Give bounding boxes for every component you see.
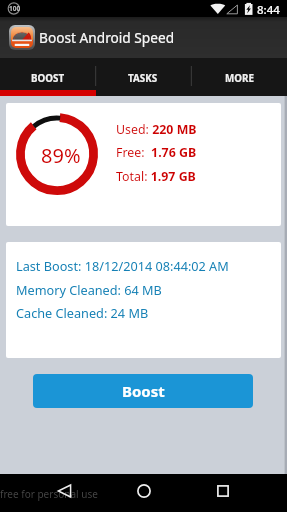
staticText: Used: 220 MB	[116, 121, 197, 138]
staticText: free for personal use	[0, 487, 98, 501]
staticText: Free: 1.76 GB	[116, 144, 197, 161]
staticText: Last Boost: 18/12/2014 08:44:02 AM	[16, 257, 229, 274]
button[interactable]: Boost	[33, 374, 253, 408]
button[interactable]: BOOST	[0, 58, 95, 96]
button[interactable]: Home	[123, 472, 164, 510]
button[interactable]: Back	[44, 472, 85, 510]
staticText: 100	[9, 4, 21, 13]
staticText: Memory Cleaned: 64 MB	[16, 281, 162, 298]
staticText: Boost	[122, 381, 165, 401]
staticText: Cache Cleaned: 24 MB	[16, 304, 149, 321]
button[interactable]: Recents	[202, 472, 243, 510]
staticText: MORE	[225, 72, 254, 85]
button[interactable]: MORE	[191, 58, 287, 96]
staticText: TASKS	[128, 72, 158, 85]
staticText: BOOST	[31, 72, 65, 85]
staticText: 89%	[41, 142, 81, 169]
staticText: Boost Android Speed	[39, 28, 175, 47]
button[interactable]: TASKS	[95, 58, 191, 96]
staticText: Total: 1.97 GB	[116, 168, 196, 185]
staticText: 8:44	[257, 2, 280, 18]
